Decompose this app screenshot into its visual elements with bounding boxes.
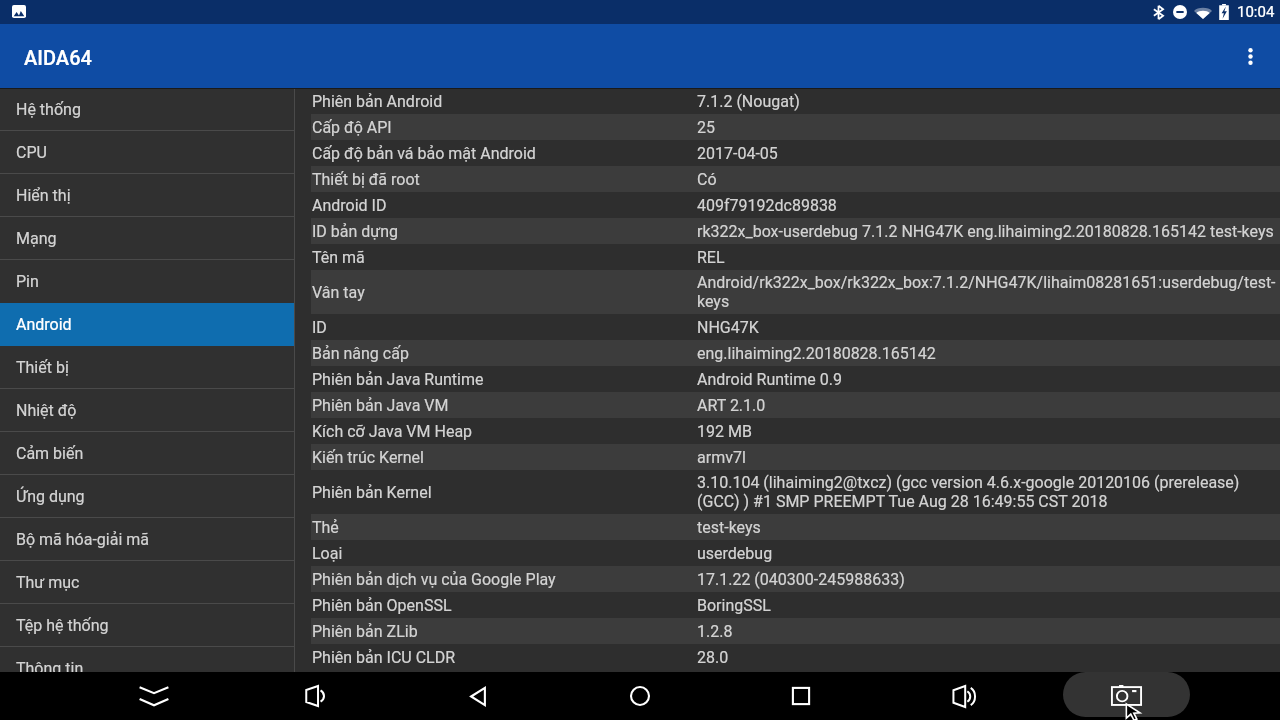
button[interactable]: Thiết bị đã root	[295, 166, 1280, 192]
button[interactable]: Kích cỡ Java VM Heap	[295, 418, 1280, 444]
staticText: Kích cỡ Java VM Heap	[312, 422, 473, 441]
staticText: Thông tin	[16, 659, 84, 672]
button[interactable]: Phiên bản OpenSSL	[295, 592, 1280, 618]
button[interactable]: Kiến trúc Kernel	[295, 444, 1280, 470]
button[interactable]: Vân tay	[295, 270, 1280, 314]
staticText: Thư mục	[16, 573, 80, 592]
button[interactable]: Phiên bản Java Runtime	[295, 366, 1280, 392]
button[interactable]: Thẻ	[295, 514, 1280, 540]
button[interactable]: Phiên bản Java VM	[295, 392, 1280, 418]
button[interactable]: Volume up	[940, 672, 988, 720]
staticText: eng.lihaiming2.20180828.165142	[697, 344, 936, 363]
staticText: Mạng	[16, 229, 57, 248]
button[interactable]: Bản nâng cấp	[295, 340, 1280, 366]
button[interactable]: ID bản dựng	[295, 218, 1280, 244]
staticText: BoringSSL	[697, 596, 771, 615]
button[interactable]: Volume down	[291, 672, 339, 720]
staticText: Phiên bản ZLib	[312, 622, 418, 641]
staticText: Phiên bản dịch vụ của Google Play	[312, 570, 556, 589]
button[interactable]: Phiên bản ZLib	[295, 618, 1280, 644]
button[interactable]: Mạng	[0, 217, 295, 260]
button[interactable]: Notifications	[130, 672, 178, 720]
staticText: Hiển thị	[16, 186, 71, 205]
button[interactable]: Cấp độ bản vá bảo mật Android	[295, 140, 1280, 166]
button[interactable]: Loại	[295, 540, 1280, 566]
staticText: Cấp độ API	[312, 118, 392, 137]
button[interactable]: Phiên bản Kernel	[295, 470, 1280, 514]
staticText: CPU	[16, 143, 47, 162]
staticText: Android Runtime 0.9	[697, 370, 842, 389]
staticText: Hệ thống	[16, 100, 81, 119]
staticText: rk322x_box-userdebug 7.1.2 NHG47K eng.li…	[697, 222, 1274, 241]
staticText: Cảm biến	[16, 444, 84, 463]
staticText: Phiên bản ICU CLDR	[312, 648, 456, 667]
button[interactable]: Bộ mã hóa-giải mã	[0, 518, 295, 561]
staticText: Thiết bị đã root	[312, 170, 420, 189]
staticText: Bộ mã hóa-giải mã	[16, 530, 149, 549]
button[interactable]: Hiển thị	[0, 174, 295, 217]
staticText: Phiên bản Kernel	[312, 483, 432, 502]
staticText: Pin	[16, 272, 39, 291]
button[interactable]: Android	[0, 303, 295, 346]
button[interactable]: Phiên bản ICU CLDR	[295, 644, 1280, 670]
staticText: Phiên bản Java Runtime	[312, 370, 484, 389]
staticText: 3.10.104 (lihaiming2@txcz) (gcc version …	[697, 473, 1280, 511]
staticText: Phiên bản Java VM	[312, 396, 449, 415]
button[interactable]: Tên mã	[295, 244, 1280, 270]
button[interactable]: Ứng dụng	[0, 475, 295, 518]
staticText: Kiến trúc Kernel	[312, 448, 424, 467]
staticText: ART 2.1.0	[697, 396, 766, 415]
staticText: REL	[697, 248, 725, 267]
button[interactable]: Pin	[0, 260, 295, 303]
staticText: 25	[697, 118, 715, 137]
button[interactable]: Recents	[777, 672, 825, 720]
staticText: 28.0	[697, 648, 729, 667]
staticText: 192 MB	[697, 422, 752, 441]
button[interactable]: Cảm biến	[0, 432, 295, 475]
staticText: 2017-04-05	[697, 144, 778, 163]
staticText: Vân tay	[312, 283, 365, 302]
staticText: Android	[16, 315, 72, 334]
button[interactable]: Phiên bản Android	[295, 88, 1280, 114]
staticText: ID	[312, 318, 327, 337]
staticText: 409f79192dc89838	[697, 196, 837, 215]
button[interactable]: Home	[616, 672, 664, 720]
button[interactable]: Back	[454, 672, 502, 720]
button[interactable]: Phiên bản dịch vụ của Google Play	[295, 566, 1280, 592]
staticText: userdebug	[697, 544, 773, 563]
staticText: 7.1.2 (Nougat)	[697, 92, 800, 111]
button[interactable]: Hệ thống	[0, 88, 295, 131]
staticText: Android/rk322x_box/rk322x_box:7.1.2/NHG4…	[697, 273, 1280, 311]
staticText: Có	[697, 170, 717, 189]
staticText: AIDA64	[24, 46, 92, 69]
staticText: Cấp độ bản vá bảo mật Android	[312, 144, 536, 163]
staticText: Tệp hệ thống	[16, 616, 109, 635]
staticText: test-keys	[697, 518, 761, 537]
button[interactable]: More options	[1230, 36, 1270, 76]
button[interactable]: Android ID	[295, 192, 1280, 218]
staticText: ID bản dựng	[312, 222, 399, 241]
button[interactable]: CPU	[0, 131, 295, 174]
staticText: Phiên bản Android	[312, 92, 443, 111]
button[interactable]: Cấp độ API	[295, 114, 1280, 140]
staticText: 1.2.8	[697, 622, 733, 641]
button[interactable]: Tệp hệ thống	[0, 604, 295, 647]
button[interactable]: Nhiệt độ	[0, 389, 295, 432]
staticText: armv7l	[697, 448, 746, 467]
staticText: Thẻ	[312, 518, 339, 537]
staticText: Android ID	[312, 196, 387, 215]
staticText: 17.1.22 (040300-245988633)	[697, 570, 905, 589]
staticText: Tên mã	[312, 248, 365, 267]
button[interactable]: Thiết bị	[0, 346, 295, 389]
button[interactable]: Screenshot	[1063, 672, 1190, 717]
button[interactable]: ID	[295, 314, 1280, 340]
staticText: Thiết bị	[16, 358, 69, 377]
button[interactable]: Thông tin	[0, 647, 295, 672]
staticText: Phiên bản OpenSSL	[312, 596, 452, 615]
button[interactable]: Thư mục	[0, 561, 295, 604]
staticText: Bản nâng cấp	[312, 344, 409, 363]
staticText: Loại	[312, 544, 343, 563]
staticText: Nhiệt độ	[16, 401, 77, 420]
staticText: NHG47K	[697, 318, 759, 337]
staticText: 10:04	[1237, 3, 1275, 21]
